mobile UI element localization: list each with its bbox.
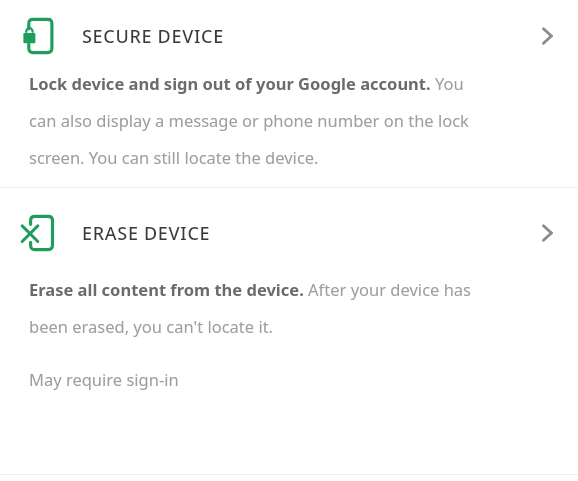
staticText: May require sign-in xyxy=(29,368,179,390)
staticText: SECURE DEVICE xyxy=(82,24,224,49)
staticText: Erase all content from the device. After… xyxy=(29,278,493,338)
other: Secure device xyxy=(24,18,54,54)
staticText: ERASE DEVICE xyxy=(82,221,211,246)
button[interactable]: Erase device xyxy=(0,188,578,278)
staticText: Lock device and sign out of your Google … xyxy=(29,72,493,169)
button[interactable]: Secure device xyxy=(0,0,578,72)
other: Erase device xyxy=(24,215,54,251)
